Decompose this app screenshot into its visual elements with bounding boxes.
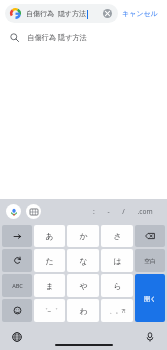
button[interactable]: 、。?! [101, 299, 133, 322]
button[interactable]: Keyboard options [26, 204, 41, 219]
button[interactable]: わ [67, 299, 99, 322]
staticText: あ [45, 231, 54, 241]
staticText: - [107, 207, 110, 216]
staticText: キャンセル [122, 9, 158, 18]
staticText: た [45, 256, 54, 266]
button[interactable]: ら [101, 274, 133, 297]
button[interactable]: か [67, 225, 99, 247]
button[interactable]: ま [34, 274, 65, 297]
button[interactable]: や [67, 274, 99, 297]
staticText: ま [45, 281, 54, 291]
staticText: / [122, 207, 125, 216]
button[interactable]: 自傷行為 隠す方法 [5, 4, 118, 23]
staticText: ら [113, 281, 122, 291]
button[interactable]: 空白 [135, 249, 165, 272]
staticText: ゜⌣゜ [41, 307, 58, 315]
button[interactable]: ゜⌣゜ [34, 299, 65, 322]
button[interactable]: な [67, 249, 99, 272]
staticText: な [79, 256, 88, 266]
staticText: は [113, 256, 122, 266]
button[interactable]: Open [135, 274, 165, 322]
button[interactable] [2, 225, 32, 247]
button[interactable]: 自傷行為 隠す方法 [0, 26, 167, 48]
button[interactable]: Voice typing [142, 329, 158, 345]
staticText: ABC [12, 282, 23, 290]
button[interactable]: Voice input [6, 204, 21, 219]
staticText: わ [79, 306, 88, 316]
staticText: 、。?! [109, 307, 126, 315]
button[interactable]: た [34, 249, 65, 272]
staticText: 自傷行為 隠す方法 [26, 9, 86, 19]
button[interactable]: / [116, 203, 131, 220]
button[interactable]: ABC [2, 274, 32, 297]
staticText: や [79, 281, 88, 291]
button[interactable]: は [101, 249, 133, 272]
button[interactable] [2, 299, 32, 322]
button[interactable]: .com [131, 203, 159, 220]
staticText: 自傷行為 隠す方法 [27, 32, 87, 42]
button[interactable]: さ [101, 225, 133, 247]
button[interactable]: : [87, 203, 101, 220]
button[interactable]: Clear [102, 8, 113, 19]
staticText: さ [113, 231, 122, 241]
button[interactable] [135, 225, 165, 247]
button[interactable]: Change language [9, 329, 25, 345]
staticText: 開く [144, 295, 156, 302]
staticText: .com [137, 207, 153, 216]
staticText: 空白 [144, 257, 156, 264]
staticText: か [79, 231, 88, 241]
staticText: : [93, 207, 95, 216]
button[interactable] [2, 249, 32, 272]
button[interactable]: キャンセル [118, 6, 162, 21]
button[interactable]: - [101, 203, 116, 220]
button[interactable]: あ [34, 225, 65, 247]
